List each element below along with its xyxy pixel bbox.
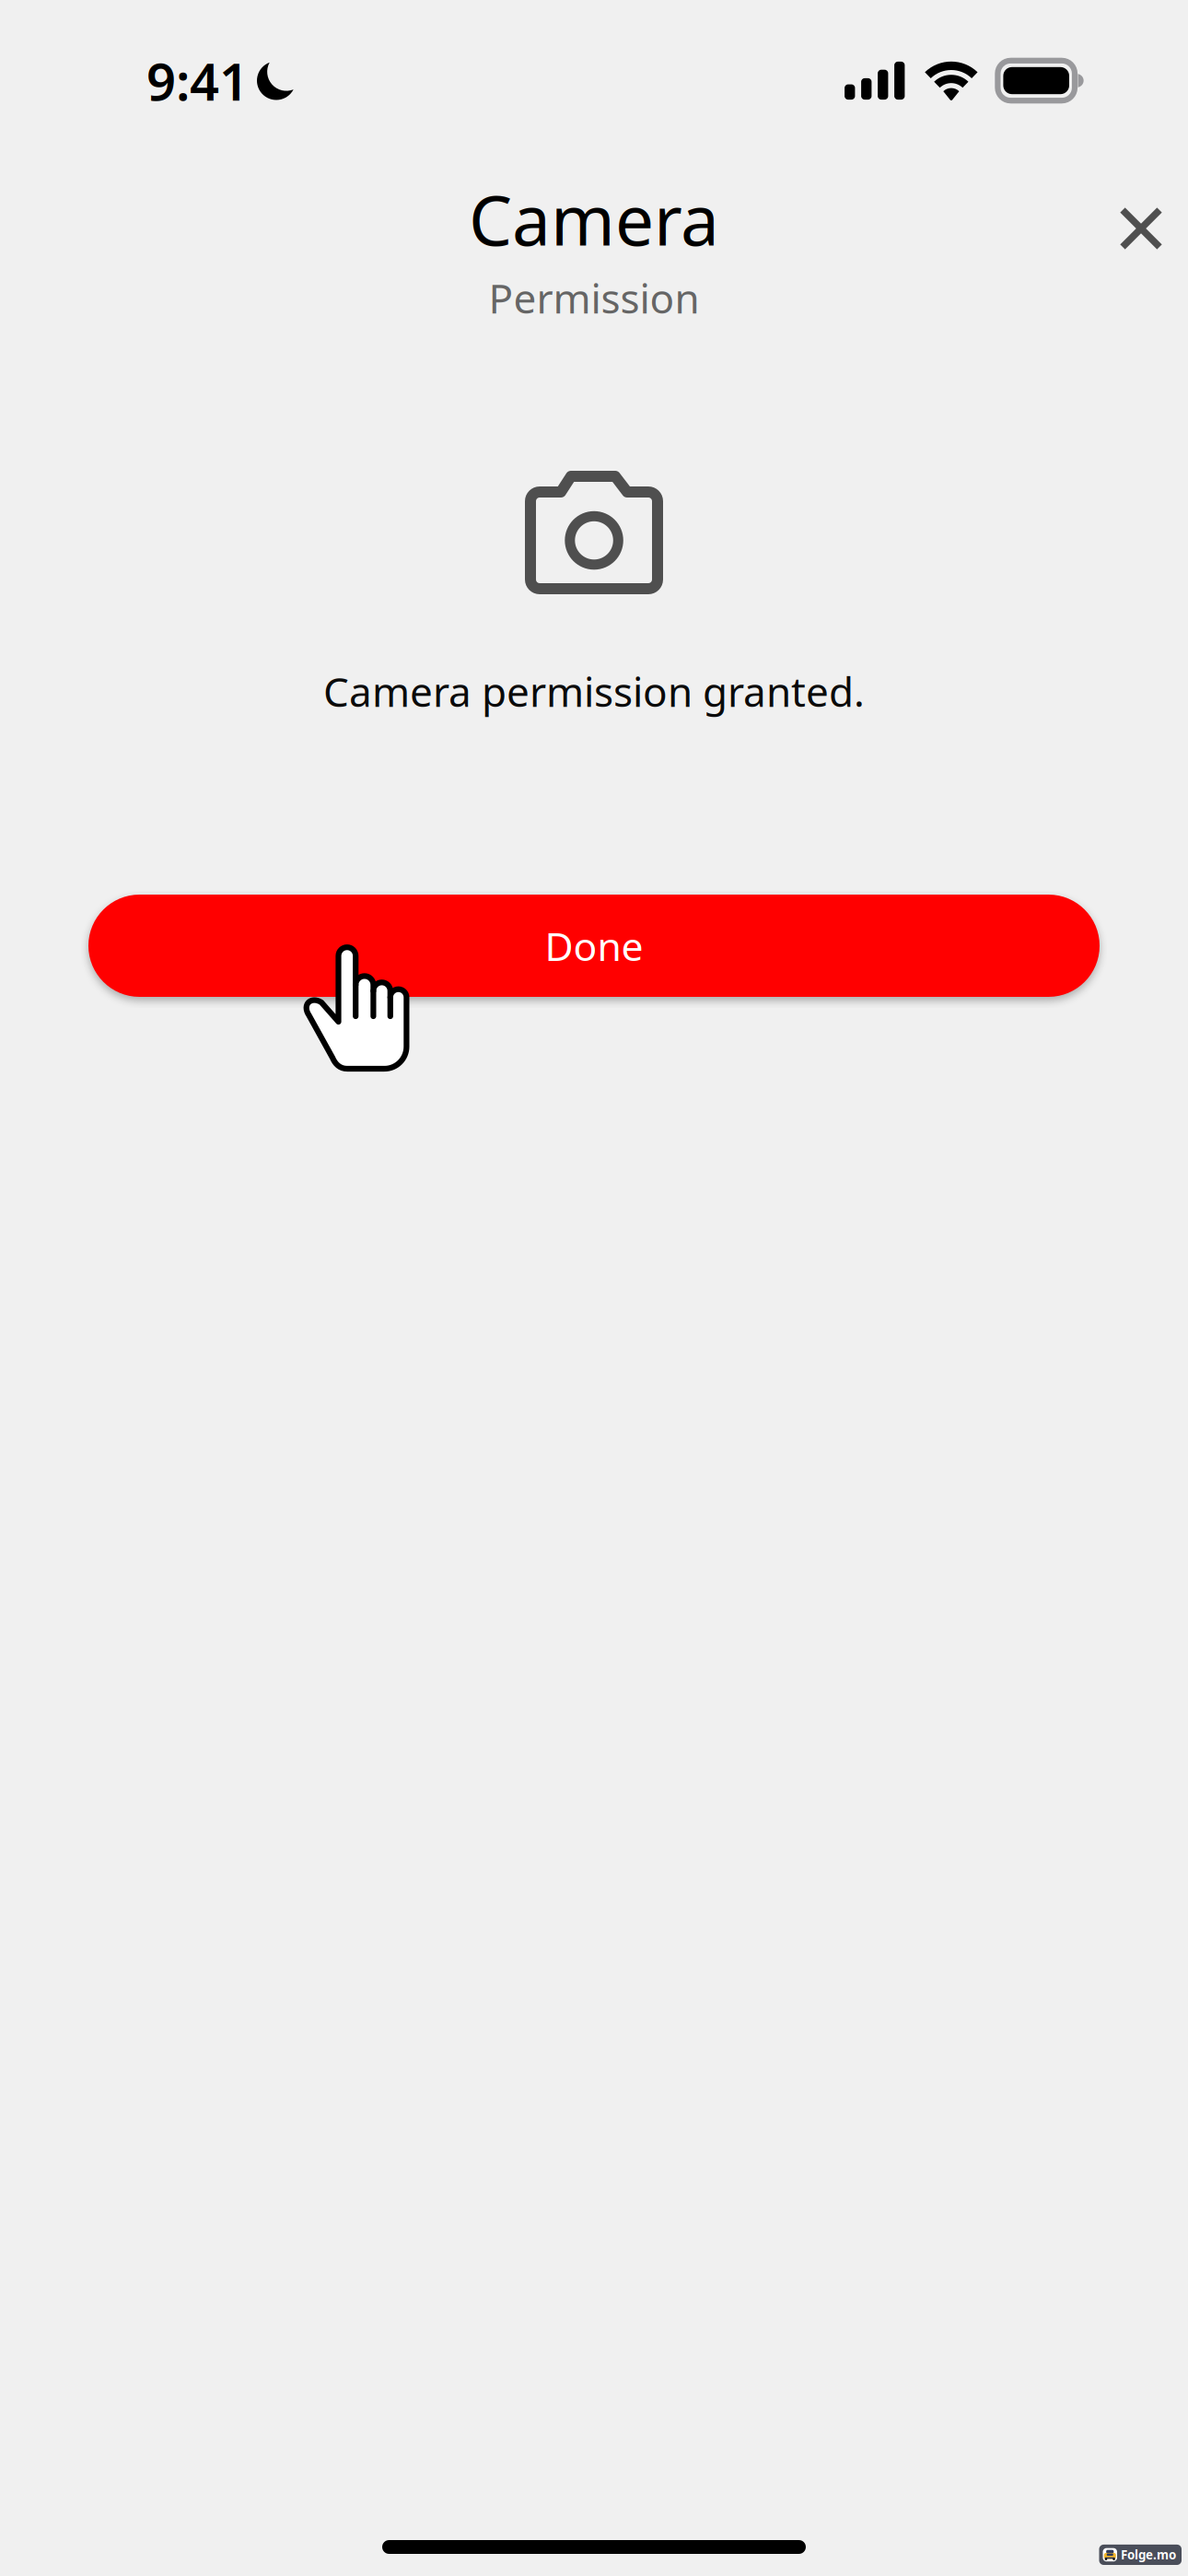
- staticText: 9:41: [146, 46, 249, 115]
- staticText: Permission: [489, 271, 699, 325]
- staticText: Camera: [469, 173, 719, 265]
- staticText: Folge.mo: [1121, 2547, 1176, 2563]
- staticText: Camera permission granted.: [323, 664, 865, 718]
- button[interactable]: Close: [1091, 179, 1188, 278]
- staticText: Done: [545, 920, 643, 972]
- button[interactable]: Done: [88, 895, 1100, 997]
